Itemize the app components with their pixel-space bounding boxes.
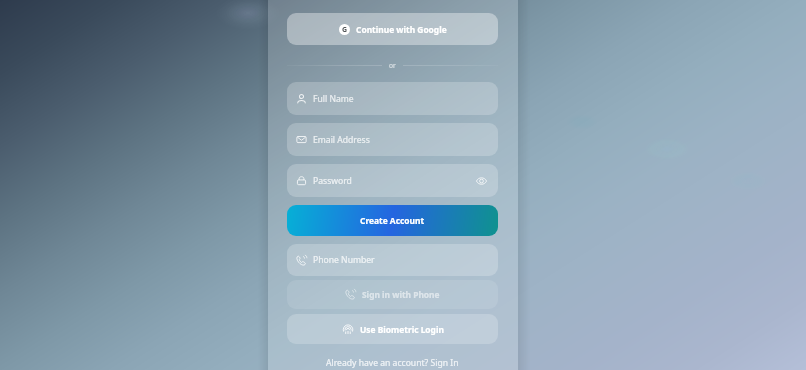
button[interactable]: Create Account bbox=[287, 205, 498, 236]
staticText: Already have an account? Sign In bbox=[326, 357, 459, 369]
button[interactable]: Sign in with Phone bbox=[287, 280, 498, 309]
button[interactable]: Full Name bbox=[287, 82, 498, 115]
staticText: Full Name bbox=[313, 93, 354, 105]
staticText: Phone Number bbox=[313, 254, 375, 266]
staticText: Create Account bbox=[360, 215, 425, 226]
staticText: Email Address bbox=[313, 134, 370, 146]
staticText: Continue with Google bbox=[356, 24, 447, 35]
button[interactable]: Password bbox=[287, 164, 498, 197]
button[interactable]: Use Biometric Login bbox=[287, 314, 498, 344]
button[interactable]: G bbox=[287, 13, 498, 45]
staticText: Use Biometric Login bbox=[360, 324, 444, 335]
staticText: or bbox=[389, 61, 396, 70]
button[interactable]: Email Address bbox=[287, 123, 498, 156]
staticText: Sign in with Phone bbox=[362, 289, 440, 300]
staticText: G bbox=[342, 25, 348, 35]
staticText: Password bbox=[313, 175, 352, 187]
button[interactable]: Phone Number bbox=[287, 244, 498, 276]
other: Show password bbox=[476, 175, 487, 186]
